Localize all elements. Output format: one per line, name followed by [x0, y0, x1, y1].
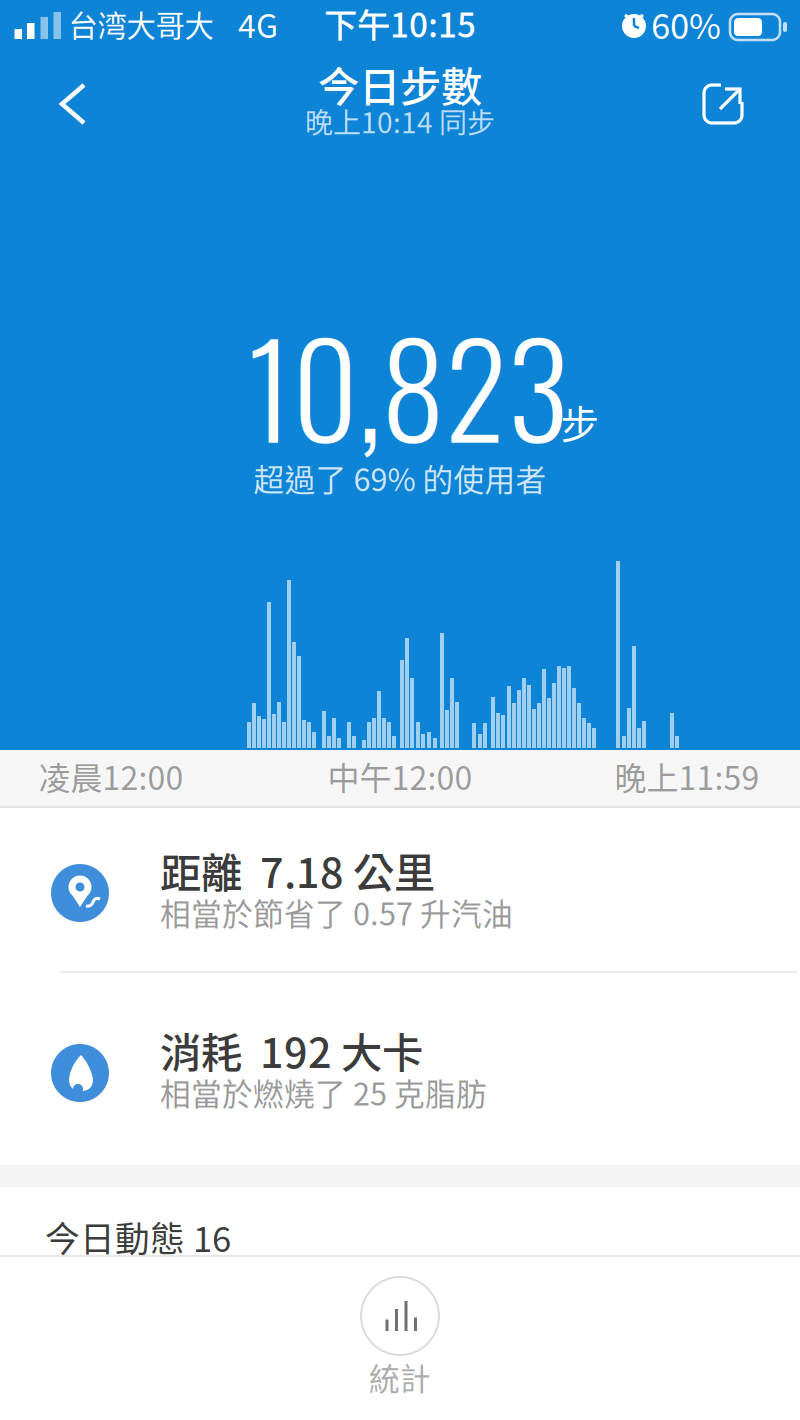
staticText: 60% — [651, 0, 721, 49]
staticText: 4G — [238, 1, 278, 47]
staticText: 下午10:15 — [324, 0, 476, 47]
button[interactable]: 消耗 192 大卡 — [0, 992, 800, 1152]
staticText: 台湾大哥大 — [68, 3, 213, 45]
staticText: 超過了 69% 的使用者 — [253, 456, 546, 500]
button[interactable]: 距離 7.18 公里 — [0, 812, 800, 972]
button[interactable] — [53, 82, 97, 126]
staticText: 晚上10:14 同步 — [305, 101, 495, 141]
staticText: 今日步數 — [318, 54, 482, 114]
staticText: 距離 7.18 公里 — [160, 840, 435, 900]
staticText: 中午12:00 — [327, 753, 472, 799]
button[interactable]: 統計 — [340, 1277, 460, 1397]
staticText: 晚上11:59 — [614, 753, 759, 799]
staticText: 凌晨12:00 — [38, 753, 183, 799]
staticText: 步 — [560, 394, 599, 450]
staticText: 今日動態 16 — [45, 1212, 231, 1262]
staticText: 相當於節省了 0.57 升汽油 — [160, 890, 513, 934]
staticText: 相當於燃燒了 25 克脂肪 — [160, 1070, 487, 1114]
staticText: 統計 — [369, 1355, 431, 1399]
staticText: 消耗 192 大卡 — [160, 1020, 423, 1080]
staticText: 10,823 — [247, 290, 569, 480]
button[interactable] — [693, 74, 753, 134]
